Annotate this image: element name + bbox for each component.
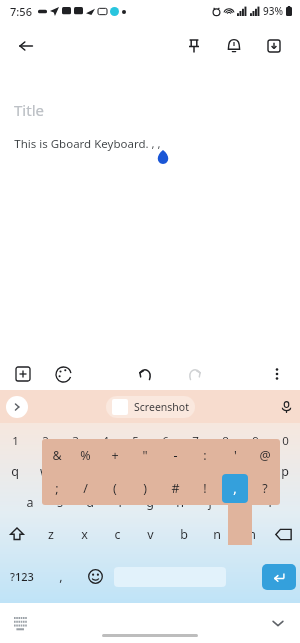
- staticText: +: [111, 447, 119, 464]
- button[interactable]: Switch keyboard: [8, 611, 32, 635]
- staticText: 3: [72, 433, 79, 449]
- staticText: /: [83, 480, 88, 497]
- button[interactable]: j: [195, 486, 225, 518]
- button[interactable]: f: [105, 486, 135, 518]
- staticText: ': [234, 447, 237, 464]
- button[interactable]: q: [0, 456, 30, 486]
- button[interactable]: Backspace: [266, 518, 300, 550]
- button[interactable]: +: [100, 439, 130, 472]
- button[interactable]: #: [160, 472, 190, 505]
- button[interactable]: %: [71, 439, 100, 472]
- button[interactable]: !: [190, 472, 220, 505]
- button[interactable]: o: [240, 456, 270, 486]
- button[interactable]: 2: [30, 426, 60, 456]
- button[interactable]: Redo: [181, 360, 209, 388]
- button[interactable]: k: [225, 486, 255, 518]
- button[interactable]: s: [45, 486, 75, 518]
- button[interactable]: u: [180, 456, 210, 486]
- staticText: Title: [14, 100, 44, 120]
- staticText: ?123: [10, 569, 34, 584]
- button[interactable]: Shift: [0, 518, 34, 550]
- button[interactable]: Reminder: [214, 26, 254, 66]
- button[interactable]: x: [68, 518, 101, 550]
- button[interactable]: 3: [60, 426, 90, 456]
- staticText: k: [237, 494, 244, 511]
- staticText: 8: [222, 433, 229, 449]
- button[interactable]: ): [130, 472, 160, 505]
- staticText: ,: [59, 568, 63, 585]
- staticText: -: [173, 447, 178, 464]
- staticText: 2: [42, 433, 49, 449]
- staticText: 7: [192, 433, 199, 449]
- button[interactable]: i: [210, 456, 240, 486]
- button[interactable]: Theme: [50, 361, 76, 387]
- staticText: 5: [132, 433, 139, 449]
- button[interactable]: r: [90, 456, 120, 486]
- button[interactable]: ?: [250, 472, 280, 505]
- button[interactable]: n: [200, 518, 233, 550]
- button[interactable]: c: [101, 518, 134, 550]
- button[interactable]: 6: [150, 426, 180, 456]
- staticText: v: [147, 526, 154, 543]
- button[interactable]: ,: [44, 550, 78, 603]
- button[interactable]: 7: [180, 426, 210, 456]
- staticText: l: [268, 494, 272, 511]
- button[interactable]: 0: [270, 426, 300, 456]
- button[interactable]: e: [60, 456, 90, 486]
- button[interactable]: g: [135, 486, 165, 518]
- button[interactable]: Enter: [262, 564, 296, 590]
- button[interactable]: z: [34, 518, 68, 550]
- staticText: This is Gboard Keyboard. , ,: [14, 136, 161, 152]
- staticText: ): [143, 480, 147, 497]
- button[interactable]: Back: [6, 26, 46, 66]
- button[interactable]: 1: [0, 426, 30, 456]
- button[interactable]: y: [150, 456, 180, 486]
- button[interactable]: (: [100, 472, 130, 505]
- button[interactable]: &: [42, 439, 71, 472]
- button[interactable]: a: [15, 486, 45, 518]
- staticText: ?: [262, 480, 268, 497]
- staticText: c: [114, 526, 121, 543]
- button[interactable]: ,: [222, 474, 248, 503]
- button[interactable]: 5: [120, 426, 150, 456]
- button[interactable]: Voice input: [274, 394, 300, 420]
- staticText: ": [142, 447, 148, 464]
- button[interactable]: w: [30, 456, 60, 486]
- button[interactable]: 4: [90, 426, 120, 456]
- staticText: f: [118, 494, 123, 511]
- button[interactable]: l: [255, 486, 285, 518]
- button[interactable]: Pin: [174, 26, 214, 66]
- button[interactable]: @: [250, 439, 280, 472]
- staticText: Screenshot: [134, 400, 189, 414]
- button[interactable]: -: [160, 439, 190, 472]
- button[interactable]: ': [220, 439, 250, 472]
- button[interactable]: Screenshot: [106, 396, 195, 418]
- staticText: ,: [233, 480, 237, 497]
- button[interactable]: ": [130, 439, 160, 472]
- button[interactable]: 8: [210, 426, 240, 456]
- button[interactable]: m: [233, 518, 266, 550]
- button[interactable]: Emoji: [78, 550, 112, 603]
- button[interactable]: Add: [10, 361, 36, 387]
- staticText: w: [40, 463, 50, 480]
- button[interactable]: Expand toolbar: [6, 396, 28, 418]
- button[interactable]: ;: [42, 472, 71, 505]
- staticText: p: [281, 463, 289, 480]
- button[interactable]: 9: [240, 426, 270, 456]
- button[interactable]: Undo: [131, 360, 159, 388]
- button[interactable]: Hide keyboard: [266, 611, 290, 635]
- button[interactable]: More options: [264, 361, 290, 387]
- button[interactable]: /: [71, 472, 100, 505]
- button[interactable]: d: [75, 486, 105, 518]
- button[interactable]: Archive: [254, 26, 294, 66]
- button[interactable]: p: [270, 456, 300, 486]
- button[interactable]: ?123: [0, 550, 44, 603]
- button[interactable]: v: [134, 518, 167, 550]
- button[interactable]: h: [165, 486, 195, 518]
- button[interactable]: :: [190, 439, 220, 472]
- button[interactable]: b: [167, 518, 200, 550]
- button[interactable]: t: [120, 456, 150, 486]
